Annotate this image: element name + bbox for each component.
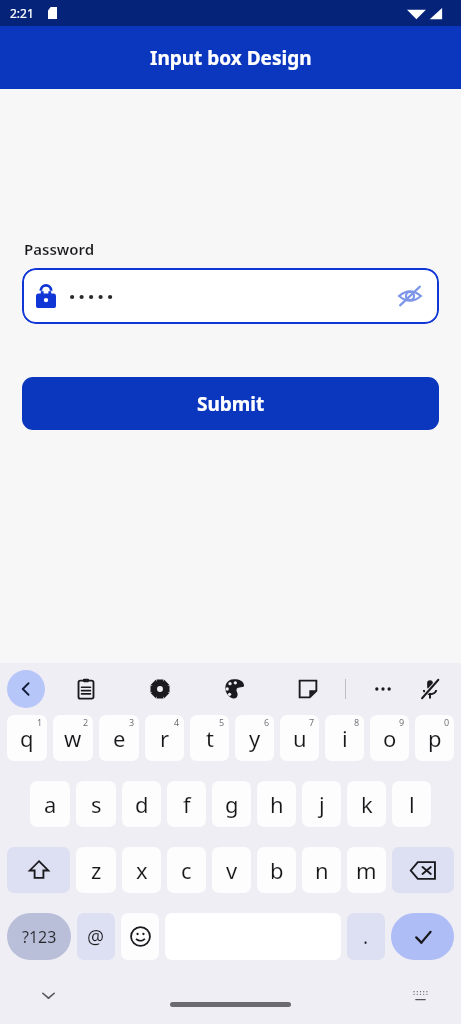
button[interactable]: o [370, 715, 409, 761]
staticText: h [270, 789, 284, 819]
button[interactable]: w [53, 715, 93, 761]
staticText: 1 [37, 716, 43, 728]
staticText: t [206, 723, 214, 753]
button[interactable]: Settings [145, 674, 175, 704]
button[interactable]: s [76, 781, 116, 827]
button[interactable]: t [190, 715, 229, 761]
button[interactable]: u [280, 715, 319, 761]
button[interactable]: Clipboard [71, 674, 101, 704]
button[interactable]: q [7, 715, 47, 761]
button[interactable]: Sticker [293, 674, 323, 704]
button[interactable]: Voice input off [415, 674, 445, 704]
staticText: . [363, 924, 369, 950]
staticText: 5 [219, 716, 225, 728]
staticText: 4 [174, 716, 180, 728]
staticText: y [249, 723, 261, 753]
button[interactable]: f [167, 781, 206, 827]
button[interactable]: i [325, 715, 364, 761]
button[interactable]: v [212, 847, 251, 893]
button[interactable]: m [347, 847, 386, 893]
button[interactable]: z [76, 847, 116, 893]
staticText: i [342, 723, 348, 753]
button[interactable]: Show password [22, 268, 439, 324]
staticText: c [181, 855, 192, 885]
staticText: l [409, 789, 415, 819]
staticText: p [428, 723, 442, 753]
staticText: 8 [354, 716, 360, 728]
button[interactable]: More options [368, 674, 398, 704]
button[interactable]: k [347, 781, 386, 827]
staticText: e [113, 723, 126, 753]
button[interactable]: x [122, 847, 161, 893]
staticText: o [383, 723, 397, 753]
button[interactable]: Back [7, 670, 45, 708]
button[interactable]: c [167, 847, 206, 893]
staticText: w [64, 723, 82, 753]
staticText: u [293, 723, 307, 753]
staticText: b [270, 855, 284, 885]
staticText: 2 [83, 716, 89, 728]
staticText: a [44, 789, 57, 819]
staticText: r [160, 723, 170, 753]
staticText: n [315, 855, 329, 885]
staticText: Password [24, 239, 95, 259]
staticText: s [91, 789, 102, 819]
button[interactable]: Shift [7, 847, 70, 893]
button[interactable]: l [392, 781, 431, 827]
button[interactable]: Hide keyboard [33, 980, 63, 1010]
staticText: v [226, 855, 238, 885]
staticText: g [225, 789, 239, 819]
staticText: q [20, 723, 34, 753]
staticText: Submit [197, 391, 265, 417]
button[interactable]: Emoji [121, 913, 159, 960]
button[interactable]: @ [77, 913, 115, 960]
button[interactable]: y [235, 715, 274, 761]
button[interactable]: Enter [391, 913, 454, 960]
button[interactable]: e [99, 715, 139, 761]
staticText: d [135, 789, 149, 819]
staticText: @ [87, 924, 105, 950]
button[interactable]: g [212, 781, 251, 827]
staticText: m [356, 855, 377, 885]
button[interactable]: Backspace [392, 847, 454, 893]
staticText: 9 [399, 716, 405, 728]
staticText: f [183, 789, 191, 819]
button[interactable]: p [415, 715, 454, 761]
button[interactable]: a [30, 781, 70, 827]
staticText: Input box Design [150, 45, 312, 71]
button[interactable]: Switch keyboard [407, 982, 433, 1008]
staticText: 2:21 [10, 5, 34, 21]
button[interactable]: . [347, 913, 385, 960]
button[interactable]: Show password [395, 281, 425, 311]
button[interactable]: n [302, 847, 341, 893]
staticText: x [136, 855, 148, 885]
button[interactable]: d [122, 781, 161, 827]
button[interactable]: h [257, 781, 296, 827]
button[interactable]: b [257, 847, 296, 893]
staticText: z [91, 855, 102, 885]
button[interactable]: j [302, 781, 341, 827]
staticText: k [361, 789, 373, 819]
button[interactable]: r [145, 715, 184, 761]
staticText: 0 [444, 716, 450, 728]
staticText: j [319, 789, 325, 819]
button[interactable]: Theme [219, 674, 249, 704]
staticText: 3 [129, 716, 135, 728]
staticText: 7 [309, 716, 315, 728]
button[interactable]: Submit [22, 377, 439, 430]
staticText: 6 [264, 716, 270, 728]
button[interactable]: ?123 [7, 913, 71, 960]
staticText: ?123 [22, 926, 57, 948]
